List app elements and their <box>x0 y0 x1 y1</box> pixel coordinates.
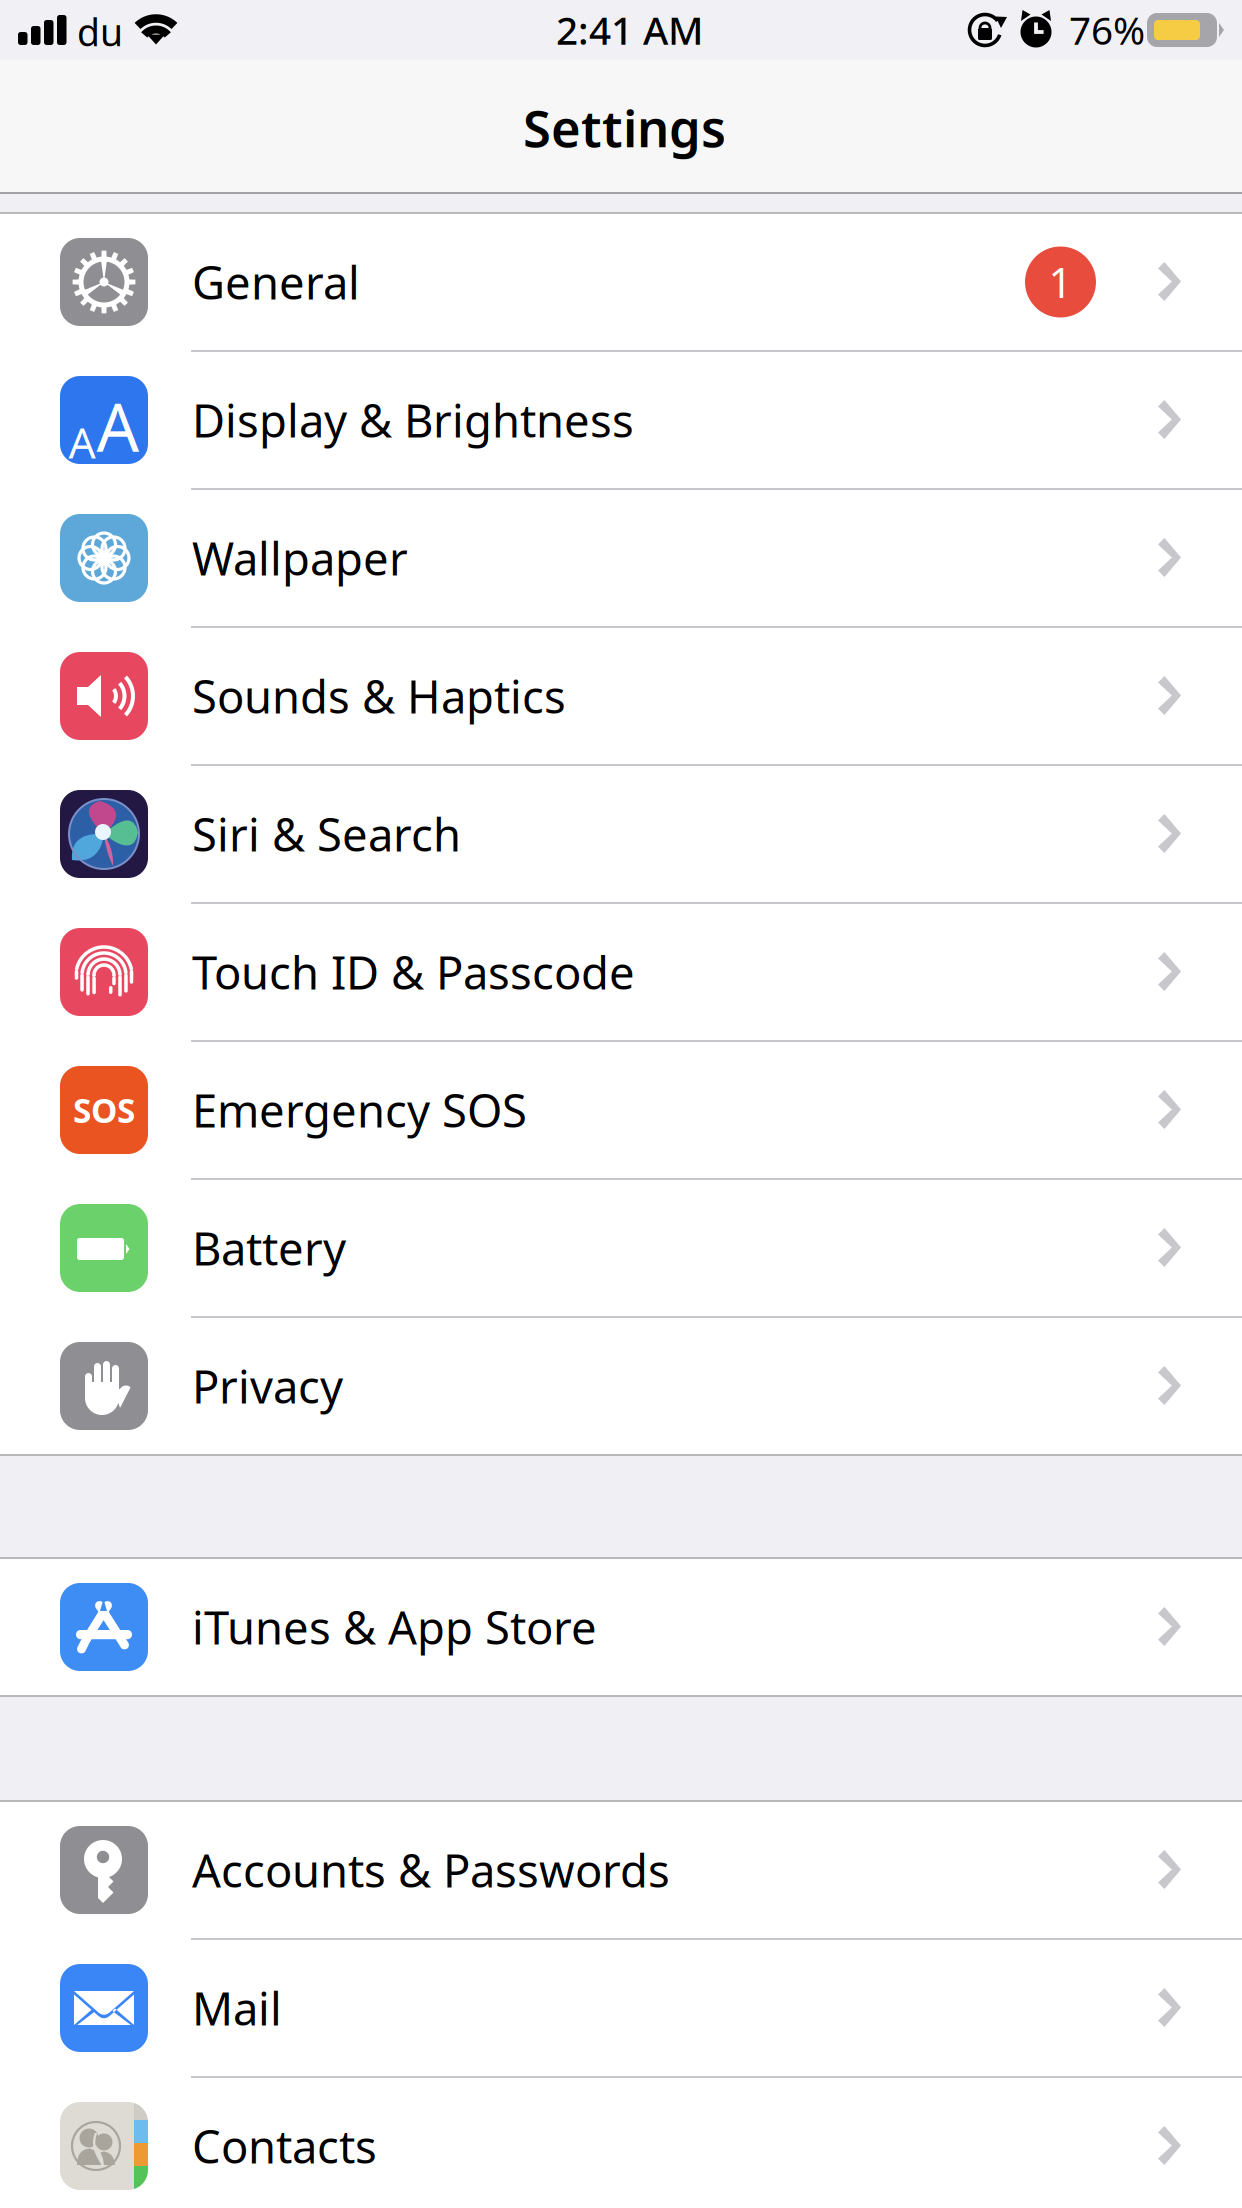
button[interactable]: A <box>0 352 1242 488</box>
staticText: Mail <box>192 1978 282 2038</box>
button[interactable]: Accounts & Passwords <box>0 1802 1242 1938</box>
staticText: A <box>96 382 139 470</box>
button[interactable]: General <box>0 214 1242 350</box>
staticText: Display & Brightness <box>192 390 634 450</box>
button[interactable]: iTunes & App Store <box>0 1559 1242 1695</box>
button[interactable]: Mail <box>0 1940 1242 2076</box>
staticText: 1 <box>1048 255 1072 309</box>
staticText: iTunes & App Store <box>192 1597 597 1657</box>
button[interactable]: Sounds & Haptics <box>0 628 1242 764</box>
staticText: 76% <box>1069 4 1145 55</box>
button[interactable]: Wallpaper <box>0 490 1242 626</box>
staticText: du <box>77 7 123 57</box>
staticText: A <box>68 414 95 470</box>
staticText: Touch ID & Passcode <box>192 942 635 1002</box>
button[interactable]: Privacy <box>0 1318 1242 1454</box>
button[interactable]: Siri & Search <box>0 766 1242 902</box>
staticText: Privacy <box>192 1356 343 1416</box>
staticText: Emergency SOS <box>192 1080 527 1140</box>
button[interactable]: Contacts <box>0 2078 1242 2208</box>
staticText: General <box>192 252 360 312</box>
button[interactable]: SOS <box>0 1042 1242 1178</box>
button[interactable]: Battery <box>0 1180 1242 1316</box>
button[interactable]: Touch ID & Passcode <box>0 904 1242 1040</box>
staticText: Accounts & Passwords <box>192 1840 670 1900</box>
staticText: Siri & Search <box>192 804 461 864</box>
staticText: Battery <box>192 1218 346 1278</box>
staticText: Settings <box>523 94 726 161</box>
staticText: Contacts <box>192 2116 377 2176</box>
staticText: Wallpaper <box>192 528 408 588</box>
staticText: SOS <box>73 1088 135 1132</box>
staticText: Sounds & Haptics <box>192 666 566 726</box>
staticText: 2:41 AM <box>556 4 703 55</box>
